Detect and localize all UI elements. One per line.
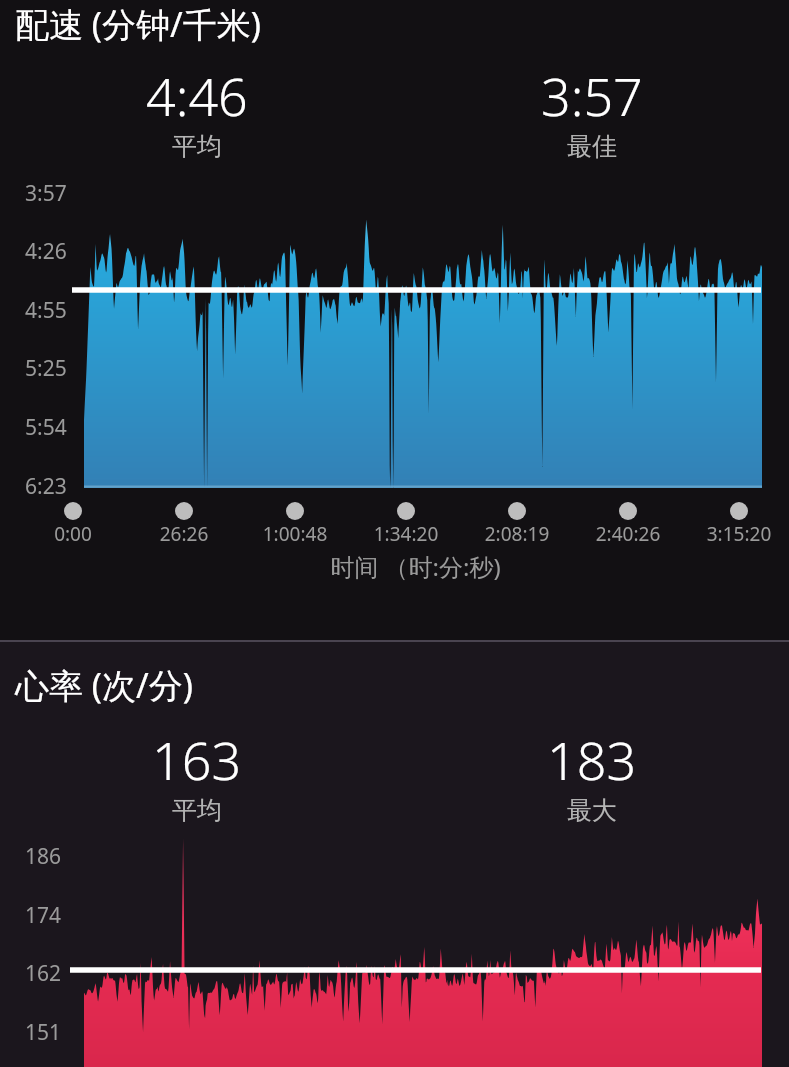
staticText: 平均 [172,795,222,826]
staticText: 心率 (次/分) [15,662,193,708]
staticText: 0:00 [18,521,128,547]
staticText: 151 [25,1018,62,1047]
staticText: 174 [25,901,62,930]
button[interactable]: 163 [0,724,394,826]
staticText: 3:57 [541,60,643,131]
button[interactable]: 4:46 [0,60,394,162]
staticText: 3:57 [25,179,67,208]
button[interactable]: 183 [394,724,789,826]
staticText: 平均 [172,131,222,162]
staticText: 最大 [567,795,617,826]
staticText: 163 [152,724,242,795]
staticText: 162 [25,959,62,988]
staticText: 3:15:20 [684,521,789,547]
staticText: 5:54 [25,413,67,442]
staticText: 2:08:19 [462,521,572,547]
staticText: 4:55 [25,296,67,325]
button[interactable]: 心率图表 [73,845,763,1067]
staticText: 183 [547,724,637,795]
staticText: 26:26 [129,521,239,547]
staticText: 2:40:26 [573,521,683,547]
staticText: 6:23 [25,472,67,501]
staticText: 配速 (分钟/千米) [15,1,261,47]
button[interactable]: 3:57 [394,60,789,162]
staticText: 4:46 [146,60,248,131]
staticText: 最佳 [567,131,617,162]
staticText: 4:26 [25,237,67,266]
staticText: 5:25 [25,354,67,383]
button[interactable]: 配速图表 [73,190,763,490]
staticText: 186 [25,842,62,871]
staticText: 时间 （时:分:秒) [21,550,789,583]
staticText: 1:00:48 [240,521,350,547]
staticText: 1:34:20 [351,521,461,547]
